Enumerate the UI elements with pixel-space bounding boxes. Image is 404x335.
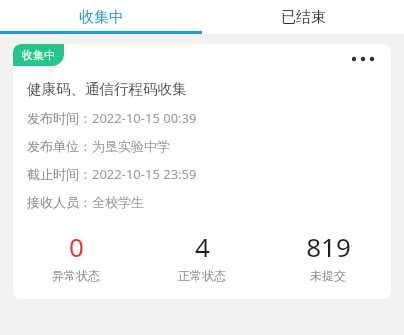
staticText: 为垦实验中学	[92, 138, 170, 154]
staticText: 收集中	[79, 8, 124, 27]
button[interactable]: 收集中	[13, 44, 391, 299]
button[interactable]: 4	[139, 229, 265, 283]
button[interactable]: 0	[13, 229, 139, 283]
staticText: 819	[306, 229, 351, 264]
staticText: 全校学生	[92, 194, 144, 210]
staticText: 2022-10-15 23:59	[92, 165, 197, 183]
button[interactable]: 819	[265, 229, 391, 283]
staticText: 未提交	[310, 268, 346, 283]
staticText: 截止时间：	[27, 166, 92, 182]
staticText: 0	[69, 229, 84, 264]
staticText: 收集中	[22, 48, 55, 62]
staticText: 发布时间：	[27, 110, 92, 126]
staticText: 发布单位：	[27, 138, 92, 154]
button[interactable]: More options	[345, 44, 381, 74]
button[interactable]: 已结束	[202, 0, 404, 34]
staticText: 已结束	[281, 8, 326, 27]
staticText: 2022-10-15 00:39	[92, 109, 197, 127]
staticText: 健康码、通信行程码收集	[27, 80, 187, 98]
staticText: 异常状态	[52, 268, 100, 283]
staticText: 接收人员：	[27, 194, 92, 210]
staticText: 4	[195, 229, 210, 264]
button[interactable]: 收集中	[0, 0, 202, 34]
staticText: 正常状态	[178, 268, 226, 283]
